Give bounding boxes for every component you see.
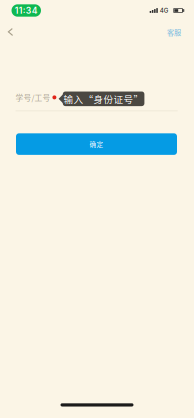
button[interactable]: 返回	[1, 20, 19, 44]
staticText: 11:34	[15, 5, 38, 16]
staticText: 输入“身份证号”	[64, 92, 144, 106]
staticText: 客服	[167, 27, 181, 37]
staticText: 4G	[160, 7, 169, 14]
staticText: 学号/工号	[15, 92, 50, 103]
button[interactable]: 确定	[16, 133, 177, 155]
staticText: 确定	[89, 139, 103, 149]
button[interactable]: 客服	[161, 19, 187, 45]
